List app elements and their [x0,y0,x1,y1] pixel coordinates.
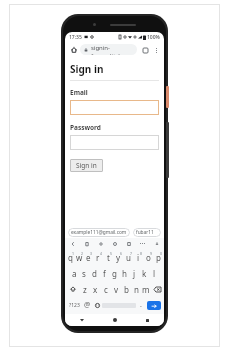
staticText: u [126,252,131,263]
button[interactable]: x [90,281,101,297]
staticText: r [96,252,100,263]
staticText: h [122,268,127,279]
button[interactable]: f [99,265,109,281]
staticText: n [134,284,139,295]
button[interactable]: y [113,249,123,265]
staticText: l [153,268,156,279]
staticText: @ [84,300,91,310]
staticText: w [76,252,83,263]
button[interactable]: b [121,281,131,297]
button[interactable]: Theme [110,239,119,248]
button[interactable]: fubar11@google.co [133,228,161,237]
button[interactable]: j [129,265,139,281]
button[interactable]: signin-form.glitch.me [80,44,137,55]
staticText: c [104,284,108,295]
staticText: Password [70,123,101,132]
button[interactable]: m [141,281,151,297]
button[interactable]: Back [68,239,77,248]
staticText: f [103,268,106,279]
staticText: m [142,284,150,295]
button[interactable]: p [153,249,163,265]
staticText: e [86,252,91,263]
staticText: d [92,268,97,279]
button[interactable]: Home [68,44,79,55]
button[interactable]: t [103,249,113,265]
staticText: 6 [120,251,123,256]
button[interactable]: Clipboard [82,239,91,248]
button[interactable]: e [84,249,93,265]
button[interactable]: l [149,265,159,281]
button[interactable]: d [89,265,99,281]
button[interactable]: More [138,239,147,248]
button[interactable]: a [70,265,79,281]
button[interactable]: . [136,297,146,313]
button[interactable]: h [119,265,129,281]
button[interactable]: n [131,281,141,297]
button[interactable]: g [109,265,119,281]
staticText: 2 [81,251,84,256]
staticText: example111@gmail.com [71,229,127,236]
staticText: 0 [160,251,163,256]
staticText: x [93,284,98,295]
staticText: b [124,284,129,295]
staticText: Sign in [76,161,97,170]
staticText: y [116,252,121,263]
button[interactable]: s [79,265,89,281]
staticText: k [142,268,147,279]
button[interactable] [70,100,159,115]
staticText: ?123 [69,302,80,309]
staticText: j [133,268,136,279]
staticText: i [137,252,140,263]
staticText: 100% [147,34,160,41]
button[interactable]: Home [98,314,131,326]
button[interactable]: Enter [147,301,161,310]
button[interactable]: Shift [66,281,79,297]
button[interactable]: Sign in [70,159,103,172]
button[interactable]: Backspace [151,281,163,297]
staticText: . [140,300,142,310]
staticText: 17:35 [69,34,82,41]
staticText: z [83,284,87,295]
staticText: 7 [130,251,133,256]
staticText: v [114,284,119,295]
button[interactable]: z [79,281,90,297]
button[interactable]: Recents [131,314,164,326]
button[interactable]: v [111,281,121,297]
staticText: g [112,268,117,279]
button[interactable]: w [75,249,84,265]
staticText: q [68,252,73,263]
button[interactable]: c [101,281,111,297]
button[interactable]: u [123,249,133,265]
staticText: t [107,252,110,263]
button[interactable]: Back [65,314,98,326]
button[interactable]: r [93,249,103,265]
button[interactable]: k [139,265,149,281]
button[interactable]: Settings [96,239,105,248]
staticText: a [72,268,77,279]
staticText: signin-form.glitch.me [91,44,133,55]
button[interactable]: Sticker [124,239,133,248]
staticText: s [82,268,86,279]
button[interactable]: Voice [152,239,161,248]
button[interactable]: o [143,249,153,265]
staticText: 1 [72,251,75,256]
button[interactable]: More options [151,45,161,55]
button[interactable]: q [66,249,75,265]
staticText: 8 [140,251,143,256]
staticText: Sign in [70,62,104,76]
staticText: 3 [90,251,93,256]
button[interactable]: i [133,249,143,265]
staticText: fubar11@google.co [136,229,158,236]
staticText: p [156,252,161,263]
button[interactable]: ?123 [67,297,82,313]
button[interactable]: Emoji [92,297,102,313]
staticText: Email [70,88,88,97]
button[interactable]: @ [82,297,92,313]
staticText: 5 [110,251,113,256]
button[interactable] [70,135,159,150]
button[interactable]: Tabs [140,45,150,55]
staticText: 4 [100,251,103,256]
button[interactable]: example111@gmail.com [68,228,130,237]
staticText: o [146,252,151,263]
